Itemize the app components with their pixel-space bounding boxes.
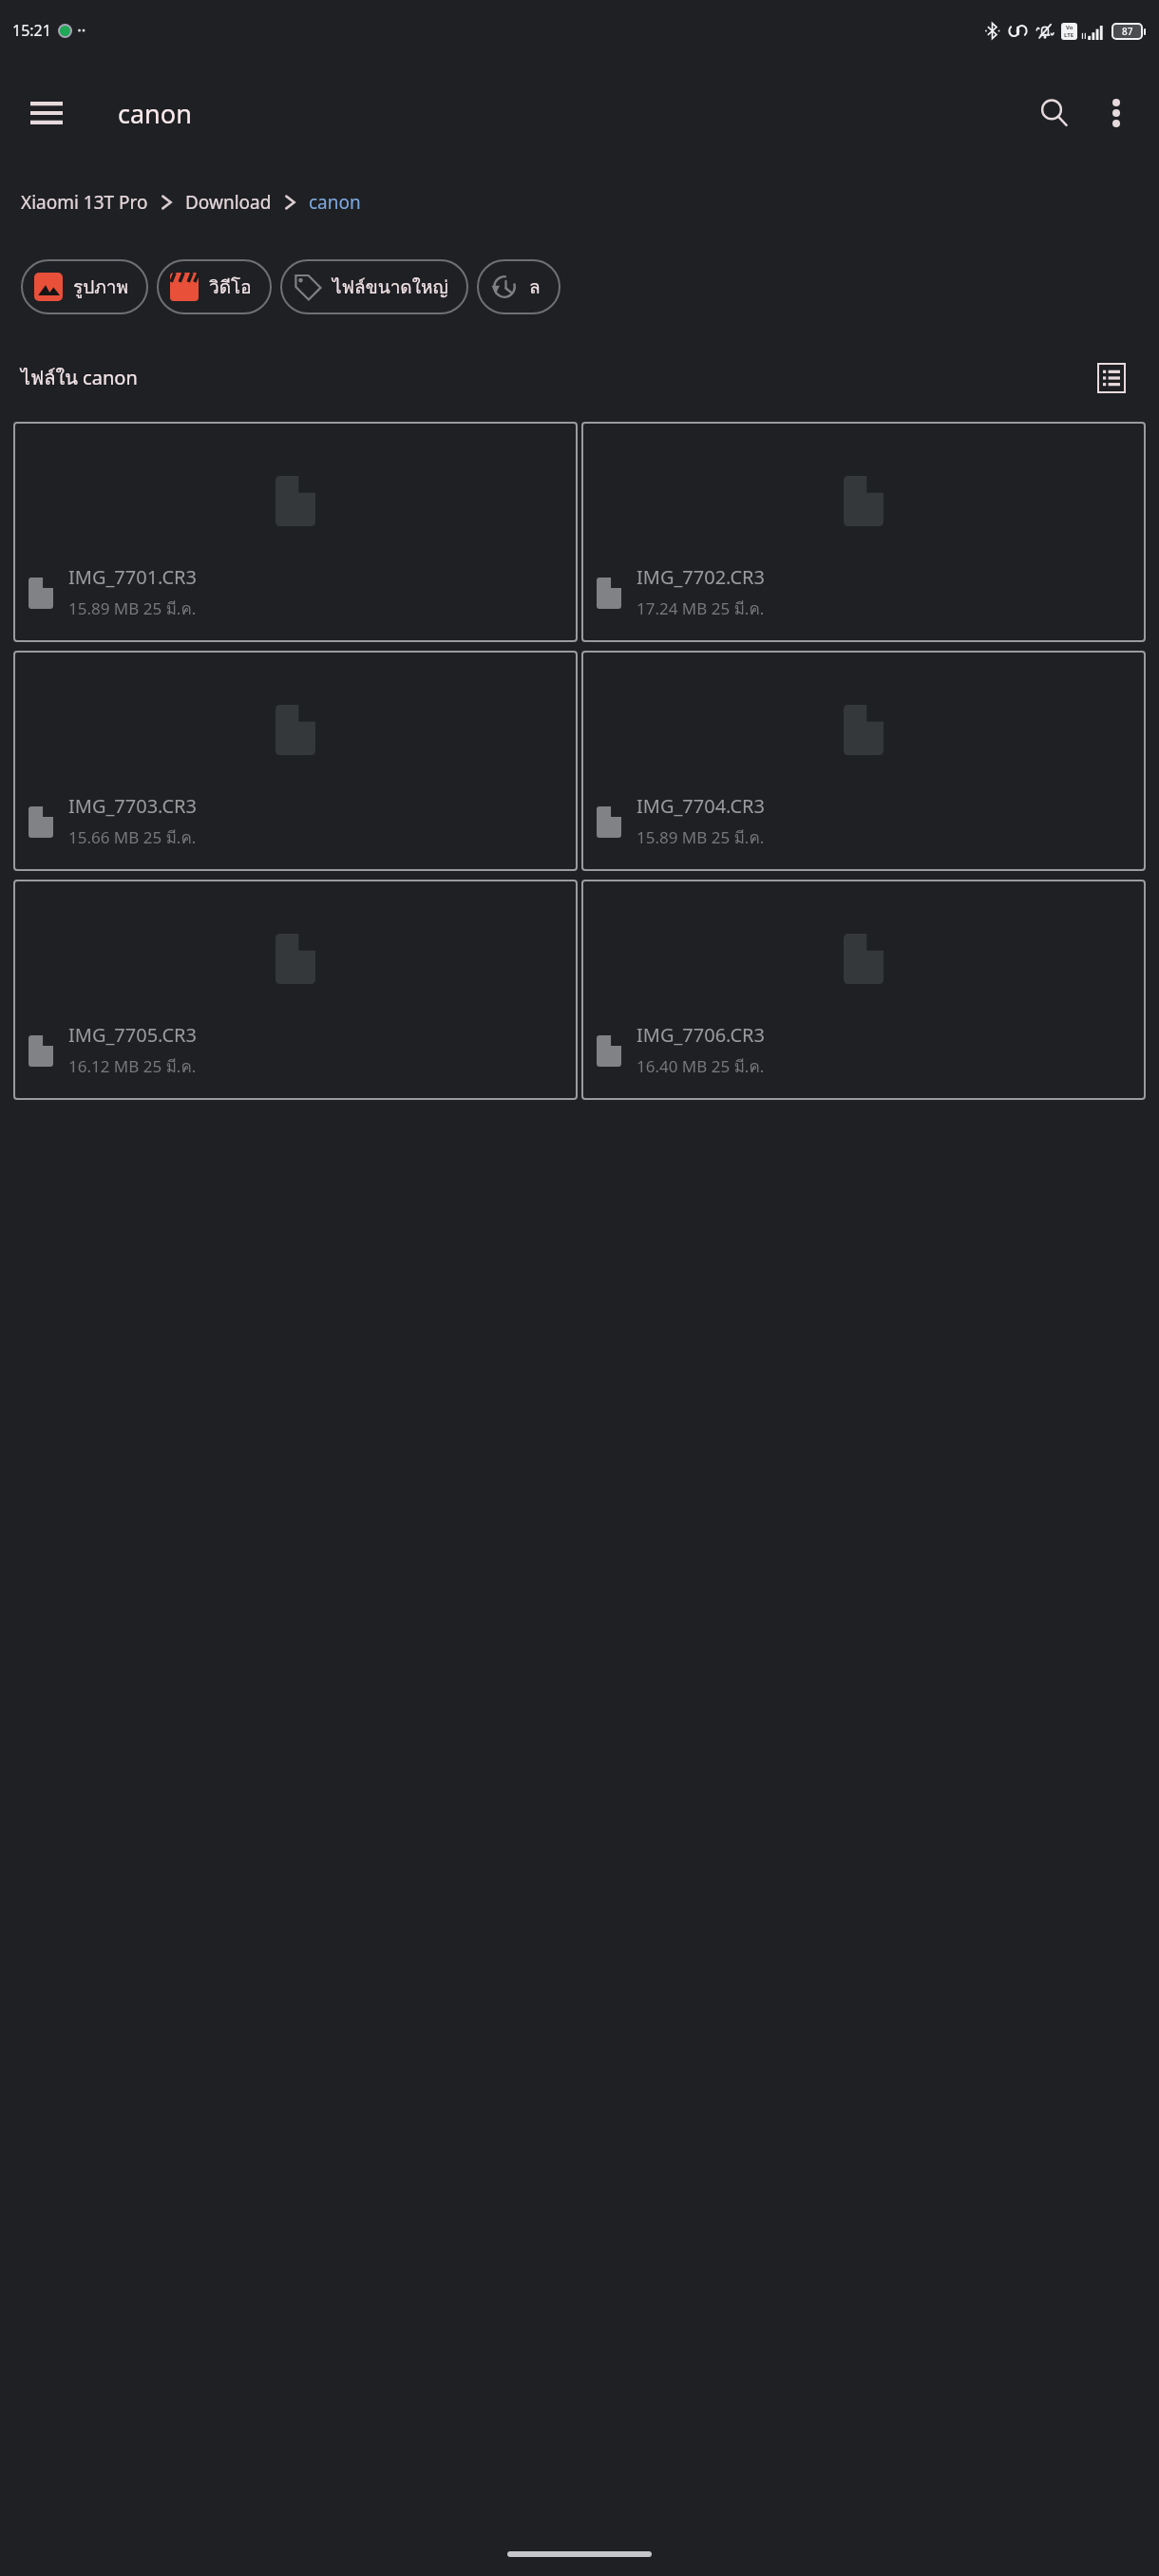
staticText: IMG_7706.CR3 — [636, 1022, 765, 1048]
button[interactable]: ล — [477, 259, 560, 314]
button[interactable]: Menu — [17, 84, 76, 142]
button[interactable]: IMG_7704.CR3 — [581, 651, 1146, 871]
staticText: วิดีโอ — [209, 273, 252, 301]
staticText: 87 — [1122, 25, 1133, 38]
staticText: 15:21 — [12, 20, 51, 41]
staticText: ไฟล์ขนาดใหญ่ — [332, 273, 448, 301]
button[interactable]: IMG_7702.CR3 — [581, 422, 1146, 642]
button[interactable]: canon — [309, 190, 361, 215]
staticText: 15.89 MB 25 มี.ค. — [636, 824, 765, 850]
staticText: IMG_7701.CR3 — [68, 564, 197, 590]
button[interactable]: IMG_7706.CR3 — [581, 880, 1146, 1100]
staticText: รูปภาพ — [73, 273, 128, 301]
staticText: 15.66 MB 25 มี.ค. — [68, 824, 197, 850]
button[interactable]: More options — [1087, 84, 1146, 142]
staticText: 15.89 MB 25 มี.ค. — [68, 596, 197, 621]
button[interactable]: IMG_7705.CR3 — [13, 880, 578, 1100]
button[interactable]: Xiaomi 13T Pro — [21, 190, 148, 215]
staticText: 17.24 MB 25 มี.ค. — [636, 596, 765, 621]
staticText: IMG_7702.CR3 — [636, 564, 765, 590]
button[interactable]: วิดีโอ — [157, 259, 272, 314]
staticText: IMG_7705.CR3 — [68, 1022, 197, 1048]
staticText: LTE — [1064, 31, 1074, 39]
staticText: canon — [118, 96, 192, 131]
button[interactable]: Download — [185, 190, 272, 215]
staticText: Vo — [1066, 24, 1073, 31]
staticText: 16.12 MB 25 มี.ค. — [68, 1053, 197, 1079]
button[interactable]: Search — [1022, 81, 1087, 145]
button[interactable]: List view — [1085, 351, 1138, 405]
staticText: IMG_7704.CR3 — [636, 793, 765, 819]
button[interactable]: รูปภาพ — [21, 259, 148, 314]
button[interactable]: IMG_7701.CR3 — [13, 422, 578, 642]
staticText: ไฟล์ใน canon — [21, 363, 138, 393]
staticText: IMG_7703.CR3 — [68, 793, 197, 819]
staticText: ล — [529, 273, 541, 301]
button[interactable]: ไฟล์ขนาดใหญ่ — [280, 259, 468, 314]
button[interactable]: IMG_7703.CR3 — [13, 651, 578, 871]
staticText: 16.40 MB 25 มี.ค. — [636, 1053, 765, 1079]
